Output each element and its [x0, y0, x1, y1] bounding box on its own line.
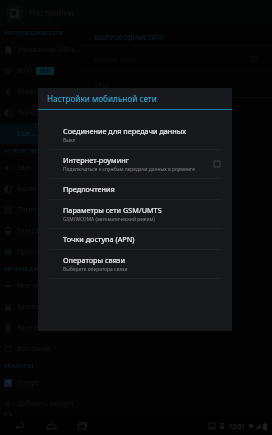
- staticText: Восстанов: [17, 344, 51, 353]
- staticText: Приложен: [17, 247, 51, 256]
- staticText: Wi-Fi: [17, 66, 33, 75]
- staticText: БЕСПРОВОДНЫЕ СЕТИ: [94, 33, 164, 41]
- button[interactable]: Интернет-роуминг: [38, 150, 232, 178]
- staticText: Батарея: [17, 226, 43, 235]
- staticText: GSM/WCDMA (автоматический режим): [63, 216, 155, 223]
- button[interactable]: Память: [0, 199, 80, 220]
- staticText: Соединение для передачи данных: [63, 126, 187, 136]
- button[interactable]: Предпочтения: [38, 179, 232, 199]
- staticText: VPN: [94, 80, 109, 90]
- staticText: Предпочтения: [63, 184, 115, 194]
- staticText: Выберите оператора связи: [63, 266, 128, 273]
- staticText: Безопасн: [17, 302, 47, 311]
- staticText: Bluetoo: [17, 87, 42, 96]
- staticText: Звук: [17, 163, 32, 172]
- button[interactable]: VPN: [80, 72, 272, 97]
- button[interactable]: Home: [44, 419, 58, 433]
- button[interactable]: [80, 98, 272, 123]
- button[interactable]: Звук: [0, 157, 80, 178]
- staticText: ВКЛ: [40, 68, 50, 74]
- staticText: Выкл: [63, 137, 76, 144]
- staticText: СИСТЕМА: [4, 414, 30, 416]
- button[interactable]: Google: [0, 372, 80, 393]
- button[interactable]: Settings app icon: [7, 6, 22, 21]
- staticText: ЛИЧНЫЕ ДАННЫЕ: [4, 265, 52, 272]
- staticText: Язык и вв: [17, 323, 48, 332]
- button[interactable]: Toggle Bluetoo: [45, 88, 63, 96]
- button[interactable]: Соединение для передачи данных: [38, 121, 232, 149]
- staticText: БЕСПРОВОДНЫЕ СЕТИ: [4, 29, 63, 36]
- staticText: АККАУНТЫ: [4, 362, 34, 369]
- staticText: УСТРОЙСТВО: [4, 147, 39, 154]
- button[interactable]: Батарея: [0, 220, 80, 241]
- staticText: Экран: [17, 184, 37, 193]
- staticText: Управление SIM-картами: [17, 45, 80, 54]
- staticText: Добавить аккаунт: [17, 399, 75, 408]
- button[interactable]: Toggle Wi-Fi: [36, 67, 54, 75]
- staticText: Подключаться к службам передачи данных в…: [63, 166, 195, 173]
- button[interactable]: Безопасн: [0, 296, 80, 317]
- staticText: Настройки: [29, 7, 74, 19]
- button[interactable]: Ещё...: [0, 123, 80, 144]
- button[interactable]: Передача: [0, 102, 80, 123]
- button[interactable]: Checkbox Интернет-роуминг: [214, 161, 220, 167]
- button[interactable]: Мое место: [0, 275, 80, 296]
- staticText: Google: [17, 378, 40, 387]
- staticText: Параметры сети GSM/UMTS: [63, 205, 162, 215]
- staticText: Интернет-роуминг: [63, 155, 129, 165]
- staticText: Передача: [17, 108, 49, 117]
- button[interactable]: Bluetoo: [0, 81, 80, 102]
- button[interactable]: Приложен: [0, 241, 80, 262]
- staticText: Ещё...: [17, 129, 36, 138]
- staticText: Точки доступа (APN): [63, 234, 135, 244]
- button[interactable]: Recent apps: [75, 419, 89, 433]
- button[interactable]: Wi-Fi: [0, 60, 80, 81]
- button[interactable]: Back: [13, 419, 27, 433]
- button[interactable]: Язык и вв: [0, 317, 80, 338]
- button[interactable]: Операторы связи: [38, 250, 232, 278]
- staticText: Операторы связи: [63, 255, 125, 265]
- staticText: Мое место: [17, 281, 52, 290]
- staticText: Настройки мобильной сети: [47, 93, 157, 104]
- button[interactable]: Параметры сети GSM/UMTS: [38, 200, 232, 228]
- button[interactable]: Экран: [0, 178, 80, 199]
- staticText: Память: [17, 205, 42, 214]
- staticText: 12:01: [229, 422, 245, 430]
- button[interactable]: Точки доступа (APN): [38, 229, 232, 249]
